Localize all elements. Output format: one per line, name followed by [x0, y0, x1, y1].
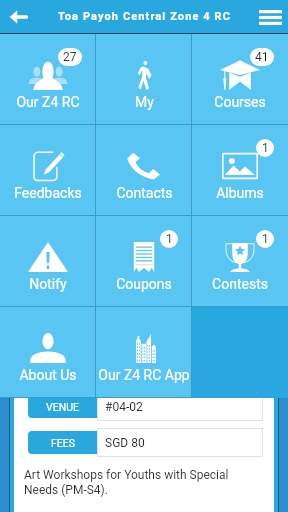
staticText: 1: [166, 232, 173, 246]
button[interactable]: Feedbacks: [0, 125, 96, 216]
staticText: Our Z4 RC App: [98, 367, 190, 383]
staticText: Albums: [216, 185, 264, 201]
staticText: Toa Payoh Central Zone 4 RC: [58, 10, 232, 23]
staticText: My: [135, 94, 154, 110]
staticText: SGD 80: [105, 436, 145, 450]
button[interactable]: Menu: [257, 4, 283, 30]
staticText: Contacts: [116, 185, 173, 201]
button[interactable]: 27: [0, 34, 96, 125]
staticText: Our Z4 RC: [16, 94, 80, 110]
button[interactable]: 1: [192, 125, 288, 216]
staticText: Courses: [214, 94, 266, 110]
staticText: Coupons: [116, 276, 172, 292]
staticText: 1: [262, 141, 269, 155]
button[interactable]: Contacts: [96, 125, 192, 216]
button[interactable]: About Us: [0, 307, 96, 398]
staticText: 27: [63, 50, 77, 64]
staticText: Feedbacks: [14, 185, 82, 201]
staticText: Art Workshops for Youths with Special Ne…: [24, 468, 236, 497]
staticText: #04-02: [105, 400, 143, 414]
button[interactable]: 1: [96, 216, 192, 307]
button[interactable]: Notify: [0, 216, 96, 307]
button[interactable]: Our Z4 RC App: [96, 307, 192, 398]
button[interactable]: Back: [5, 4, 31, 30]
button[interactable]: 1: [192, 216, 288, 307]
staticText: Contests: [212, 276, 268, 292]
staticText: 41: [255, 50, 269, 64]
staticText: VENUE: [46, 401, 79, 413]
staticText: FEES: [51, 437, 75, 449]
staticText: About Us: [19, 367, 77, 383]
staticText: 1: [262, 232, 269, 246]
staticText: Notify: [29, 276, 67, 292]
button[interactable]: My: [96, 34, 192, 125]
button[interactable]: 41: [192, 34, 288, 125]
